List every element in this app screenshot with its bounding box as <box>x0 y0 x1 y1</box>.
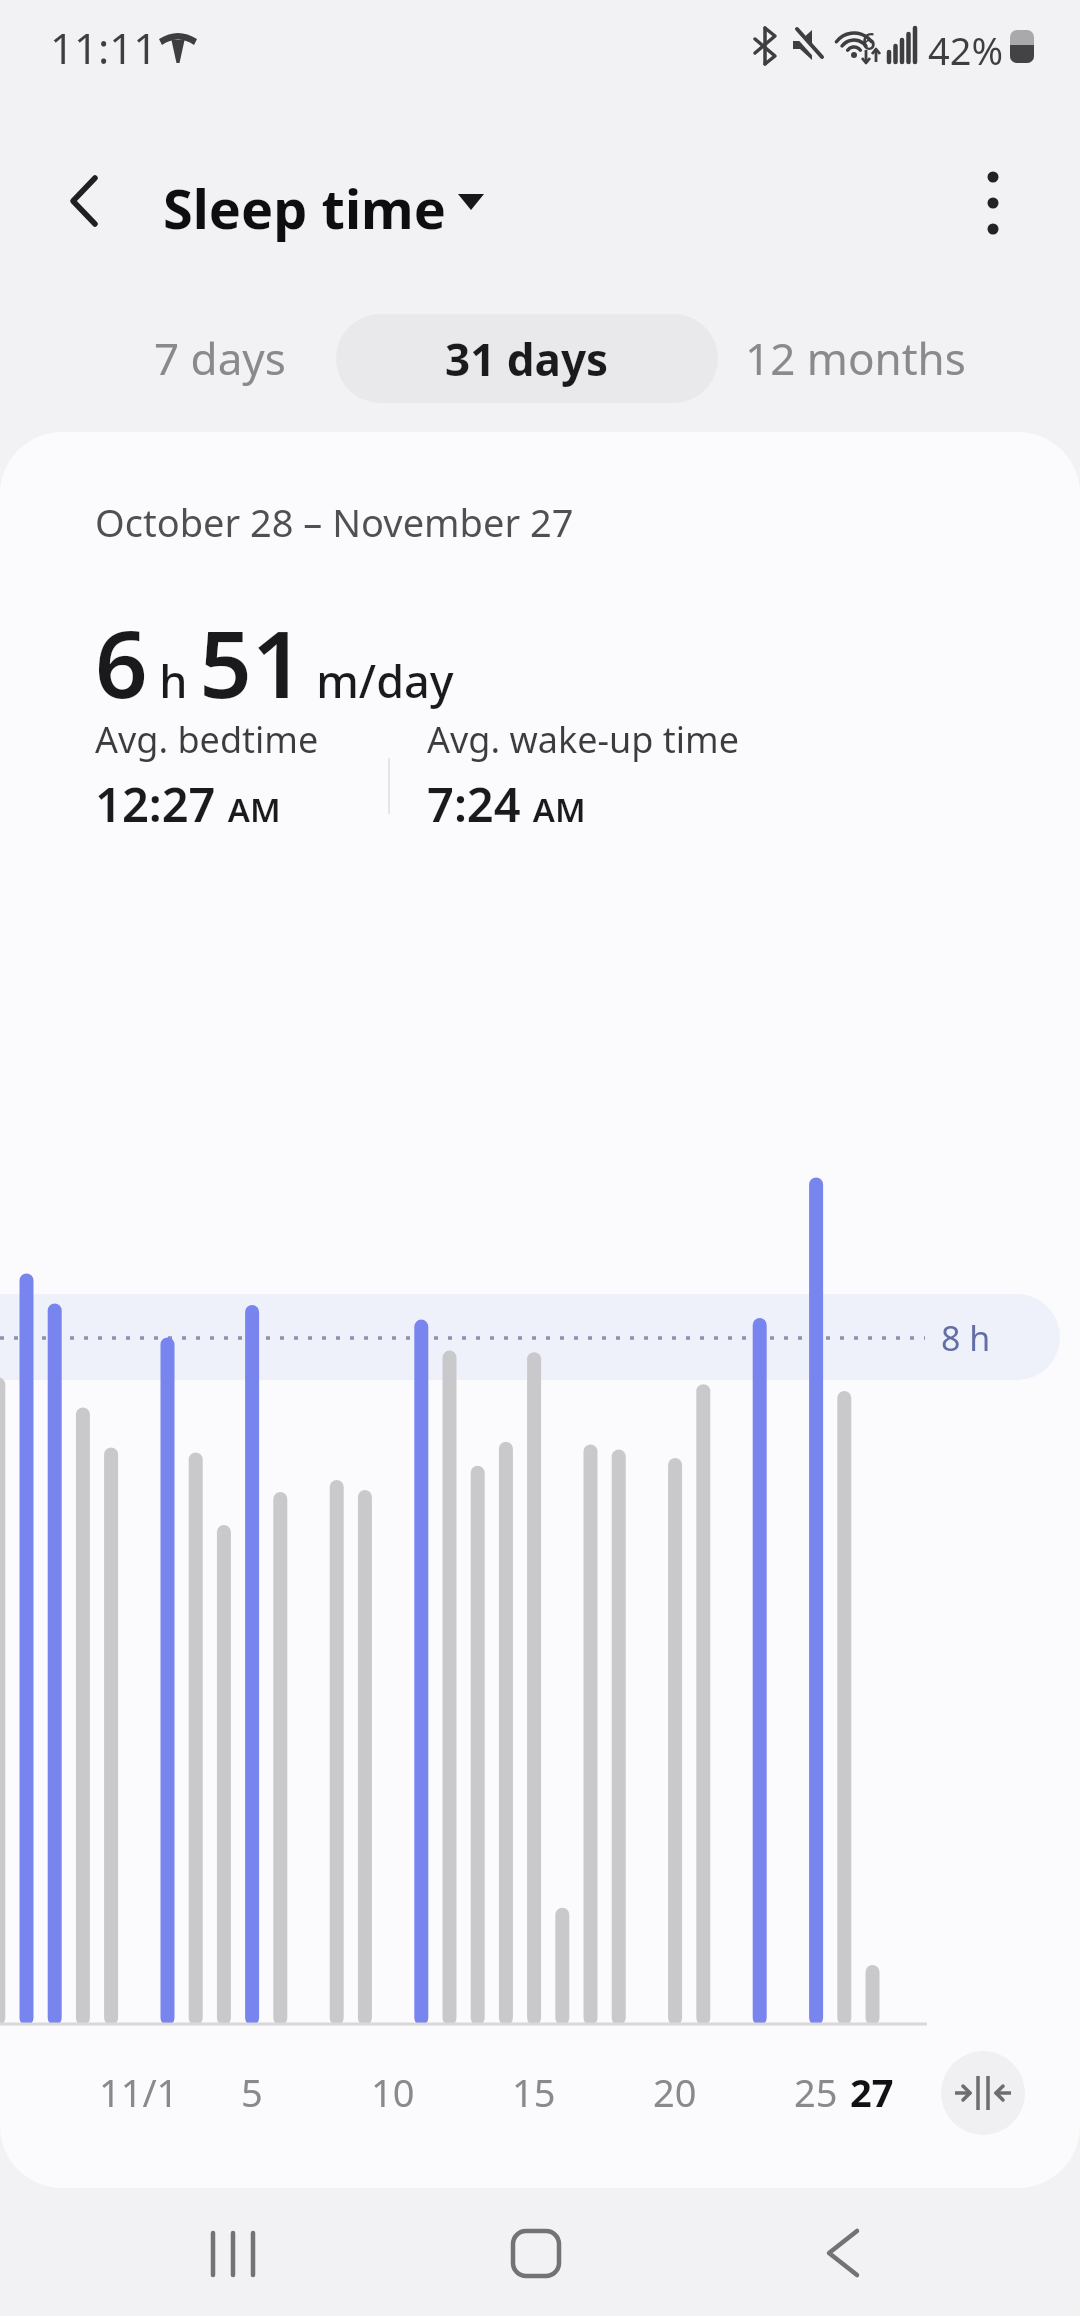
staticText: 6 h 51 m/day <box>95 600 454 725</box>
button[interactable]: 7 days <box>150 308 290 408</box>
staticText: 6 <box>862 24 876 57</box>
staticText: October 28 – November 27 <box>95 496 574 548</box>
staticText: 42% <box>928 24 1004 76</box>
staticText: 12:27 AM <box>95 772 281 836</box>
button[interactable] <box>50 160 130 240</box>
staticText: 15 <box>512 2066 556 2118</box>
button[interactable] <box>941 2051 1025 2135</box>
staticText: 7 days <box>154 328 286 388</box>
staticText: 8 h <box>941 1315 991 1361</box>
staticText: Avg. wake-up time <box>427 715 740 764</box>
staticText: 11/1 <box>99 2066 179 2118</box>
staticText: 10 <box>371 2066 415 2118</box>
staticText: 12 months <box>745 328 966 388</box>
staticText: 27 <box>850 2066 894 2118</box>
staticText: 25 <box>794 2066 838 2118</box>
staticText: 20 <box>653 2066 697 2118</box>
button[interactable] <box>183 2213 283 2295</box>
button[interactable]: Sleep time <box>163 160 493 245</box>
staticText: 31 days <box>445 329 609 389</box>
button[interactable] <box>955 160 1031 246</box>
staticText: 5 <box>241 2066 263 2118</box>
staticText: 7:24 AM <box>427 772 586 836</box>
button[interactable]: 31 days <box>336 314 718 403</box>
staticText: Avg. bedtime <box>95 715 319 764</box>
staticText: Sleep time <box>163 171 446 245</box>
button[interactable] <box>793 2213 893 2295</box>
button[interactable]: 12 months <box>735 308 975 408</box>
button[interactable] <box>487 2213 587 2295</box>
staticText: 11:11 <box>50 19 158 76</box>
